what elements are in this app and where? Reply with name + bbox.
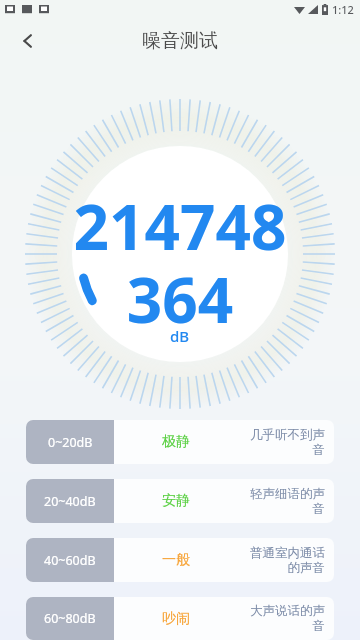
button[interactable]: 60~80dB — [26, 597, 334, 640]
button[interactable]: Back — [8, 21, 48, 61]
staticText: 几乎听不到声音 — [238, 427, 325, 458]
staticText: 40~60dB — [44, 552, 96, 569]
button[interactable]: 0~20dB — [26, 420, 334, 464]
staticText: 吵闹 — [162, 610, 190, 628]
staticText: 安静 — [162, 492, 190, 510]
staticText: 60~80dB — [44, 610, 96, 627]
staticText: 极静 — [162, 433, 190, 451]
button[interactable]: 20~40dB — [26, 479, 334, 523]
staticText: 噪音测试 — [142, 29, 218, 53]
staticText: 普通室内通话的声音 — [238, 545, 325, 576]
staticText: 大声说话的声音 — [238, 603, 325, 634]
staticText: 214748364 — [65, 184, 295, 341]
staticText: 轻声细语的声音 — [238, 486, 325, 517]
staticText: 0~20dB — [48, 434, 93, 451]
staticText: dB — [170, 326, 190, 346]
staticText: 一般 — [162, 551, 190, 569]
button[interactable]: 40~60dB — [26, 538, 334, 582]
staticText: 1:12 — [332, 2, 354, 17]
staticText: 20~40dB — [44, 493, 96, 510]
